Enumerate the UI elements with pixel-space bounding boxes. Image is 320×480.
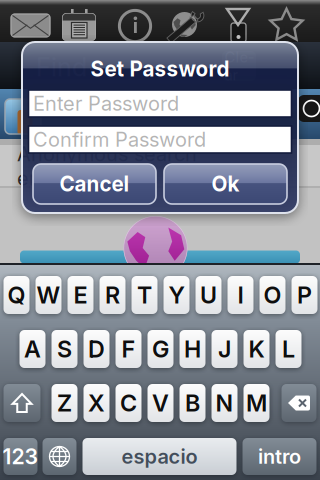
staticText: H — [184, 335, 201, 363]
button[interactable]: I — [227, 276, 253, 314]
staticText: espacio — [121, 444, 197, 469]
button[interactable]: P — [291, 276, 317, 314]
button[interactable]: H — [179, 330, 205, 368]
staticText: Find — [36, 52, 87, 82]
button[interactable]: R — [99, 276, 125, 314]
staticText: V — [152, 389, 169, 417]
button[interactable]: X — [83, 384, 109, 422]
button[interactable]: D — [83, 330, 109, 368]
button[interactable]: O — [259, 276, 285, 314]
button[interactable]: Delete — [281, 384, 316, 422]
staticText: Y — [168, 281, 184, 309]
button[interactable]: V — [147, 384, 173, 422]
staticText: Anonymous search engine — [17, 142, 197, 190]
staticText: T — [137, 281, 152, 309]
staticText: X — [88, 389, 105, 417]
staticText: A — [24, 335, 41, 363]
button[interactable]: Z — [51, 384, 77, 422]
staticText: Ok — [211, 171, 239, 196]
button[interactable]: B — [179, 384, 205, 422]
staticText: B — [185, 389, 200, 417]
button[interactable]: Y — [163, 276, 189, 314]
staticText: F — [121, 335, 135, 363]
button[interactable]: Favorites — [269, 8, 304, 42]
button[interactable]: A — [19, 330, 45, 368]
button[interactable]: K — [243, 330, 269, 368]
staticText: W — [36, 281, 60, 309]
button[interactable]: M — [243, 384, 269, 422]
button[interactable]: U — [195, 276, 221, 314]
button[interactable]: Q — [3, 276, 29, 314]
staticText: C — [120, 389, 137, 417]
button[interactable]: T — [131, 276, 157, 314]
button[interactable]: C — [115, 384, 141, 422]
staticText: Confirm Password — [33, 127, 206, 152]
staticText: J — [218, 335, 231, 363]
button[interactable]: Filter — [227, 9, 249, 42]
button[interactable]: F — [115, 330, 141, 368]
staticText: E — [73, 281, 87, 309]
button[interactable]: W — [35, 276, 61, 314]
button[interactable]: Cancel — [33, 164, 156, 204]
staticText: K — [248, 335, 264, 363]
button[interactable]: N — [211, 384, 237, 422]
button[interactable]: Next keyboard — [42, 438, 76, 475]
staticText: Set Password — [90, 56, 229, 81]
staticText: S — [57, 335, 72, 363]
button[interactable]: Mail — [11, 14, 50, 37]
button[interactable]: G — [147, 330, 173, 368]
staticText: Cancel — [59, 171, 129, 196]
staticText: 123 — [2, 444, 38, 469]
button[interactable]: espacio — [82, 438, 236, 475]
staticText: U — [200, 281, 217, 309]
staticText: Clear — [224, 48, 253, 84]
button[interactable]: Info — [118, 9, 152, 43]
button[interactable]: Ok — [164, 164, 287, 204]
button[interactable]: L — [275, 330, 301, 368]
staticText: M — [246, 389, 267, 417]
button[interactable]: Tools — [166, 9, 204, 42]
button[interactable]: S — [51, 330, 77, 368]
staticText: D — [88, 335, 105, 363]
staticText: Z — [57, 389, 72, 417]
staticText: L — [282, 335, 295, 363]
staticText: P — [297, 281, 312, 309]
button[interactable]: Numbers — [2, 438, 38, 475]
button[interactable]: E — [67, 276, 93, 314]
staticText: I — [237, 281, 243, 309]
staticText: intro — [258, 444, 301, 469]
staticText: G — [152, 335, 169, 363]
button[interactable]: Notes — [62, 9, 96, 41]
staticText: N — [215, 389, 233, 417]
staticText: O — [263, 281, 281, 309]
staticText: Enter Password — [33, 91, 179, 116]
staticText: Q — [7, 281, 25, 309]
button[interactable]: intro — [242, 438, 316, 475]
button[interactable]: Shift — [3, 384, 40, 422]
button[interactable]: J — [211, 330, 237, 368]
staticText: R — [105, 281, 120, 309]
